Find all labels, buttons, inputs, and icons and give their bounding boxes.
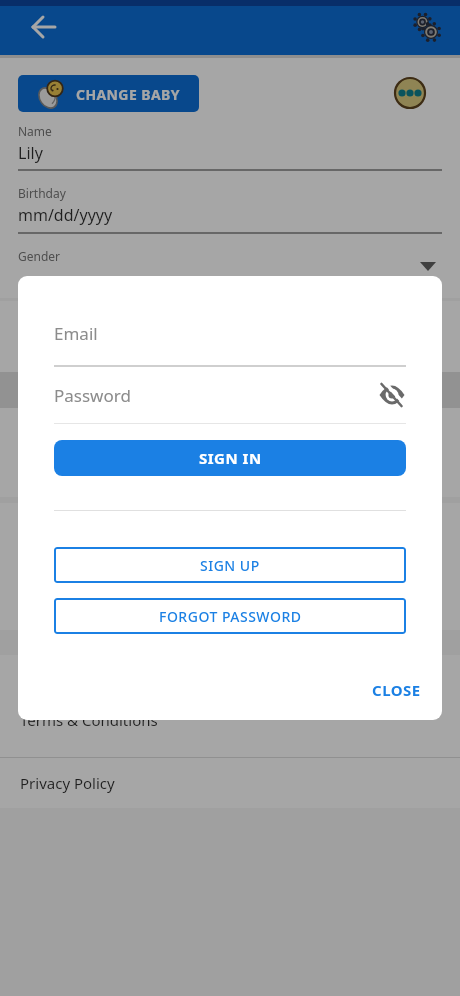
button[interactable]: Privacy Policy xyxy=(0,757,460,808)
staticText: SIGN UP xyxy=(200,556,260,575)
button[interactable]: FORGOT PASSWORD xyxy=(54,598,406,634)
button[interactable] xyxy=(26,9,62,45)
button[interactable]: CLOSE xyxy=(372,680,421,700)
button[interactable] xyxy=(412,12,442,42)
staticText: Lily xyxy=(18,142,43,164)
staticText: Name xyxy=(18,123,52,139)
staticText: mm/dd/yyyy xyxy=(18,204,113,226)
staticText: CLOSE xyxy=(372,680,421,700)
button[interactable]: Email xyxy=(54,322,254,346)
staticText: Birthday xyxy=(18,185,66,201)
button[interactable]: Terms & Conditions xyxy=(0,695,460,757)
staticText: FORGOT PASSWORD xyxy=(159,607,302,626)
staticText: Gender xyxy=(18,248,61,264)
button[interactable]: SIGN UP xyxy=(54,547,406,583)
staticText: Privacy Policy xyxy=(20,773,115,793)
staticText: CHANGE BABY xyxy=(76,85,180,104)
button[interactable]: Password xyxy=(54,384,254,408)
button[interactable]: CHANGE BABY xyxy=(18,75,199,112)
staticText: Terms & Conditions xyxy=(20,710,158,730)
button[interactable]: SIGN IN xyxy=(54,440,406,476)
button[interactable] xyxy=(394,77,426,109)
button[interactable] xyxy=(378,381,406,409)
staticText: SIGN IN xyxy=(199,448,262,468)
